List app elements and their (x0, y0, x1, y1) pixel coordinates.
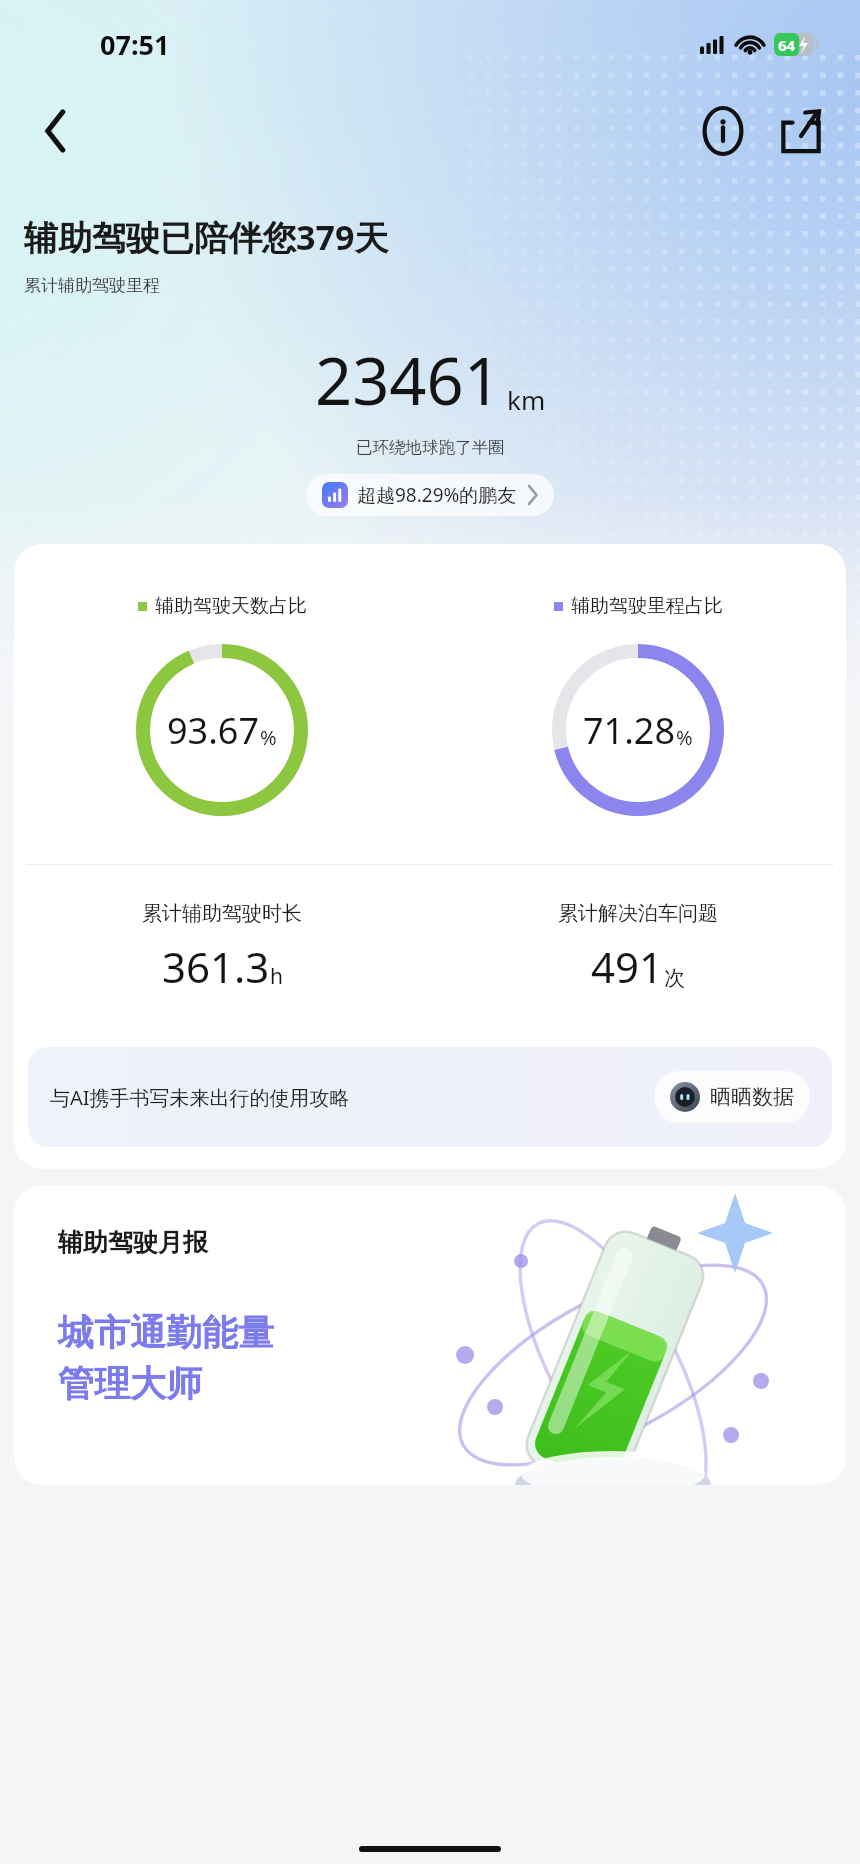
staticText: 辅助驾驶月报 (58, 1227, 208, 1258)
staticText: 64 (778, 35, 796, 55)
staticText: 与AI携手书写未来出行的使用攻略 (50, 1084, 640, 1111)
staticText: 辅助驾驶已陪伴您379天 (24, 214, 389, 260)
button[interactable]: 辅助驾驶月报 (14, 1185, 846, 1485)
staticText: % (676, 724, 693, 751)
staticText: 23461 (315, 336, 501, 425)
staticText: 累计解决泊车问题 (558, 901, 718, 926)
staticText: 管理大师 (58, 1361, 202, 1406)
button[interactable]: Info (692, 100, 754, 162)
staticText: 辅助驾驶天数占比 (155, 594, 307, 618)
staticText: 累计辅助驾驶时长 (142, 901, 302, 926)
staticText: 超越98.29%的鹏友 (357, 482, 517, 508)
staticText: 次 (664, 965, 685, 991)
staticText: 361.3 (162, 938, 270, 995)
staticText: 已环绕地球跑了半圈 (356, 437, 505, 458)
staticText: 辅助驾驶里程占比 (571, 594, 723, 618)
staticText: % (260, 724, 277, 751)
button[interactable]: 超越98.29%的鹏友 (306, 474, 554, 516)
staticText: 491 (591, 938, 664, 995)
staticText: 93.67 (167, 706, 260, 755)
staticText: 07:51 (100, 26, 170, 63)
staticText: km (507, 382, 546, 417)
button[interactable]: 与AI携手书写未来出行的使用攻略 (28, 1047, 832, 1147)
staticText: h (270, 962, 283, 991)
button[interactable]: 晒晒数据 (654, 1071, 810, 1123)
button[interactable]: Share (770, 100, 832, 162)
staticText: 城市通勤能量 (58, 1310, 274, 1355)
staticText: 71.28 (583, 706, 676, 755)
staticText: 晒晒数据 (710, 1084, 794, 1110)
staticText: 累计辅助驾驶里程 (24, 275, 160, 296)
button[interactable]: Back (28, 103, 84, 159)
